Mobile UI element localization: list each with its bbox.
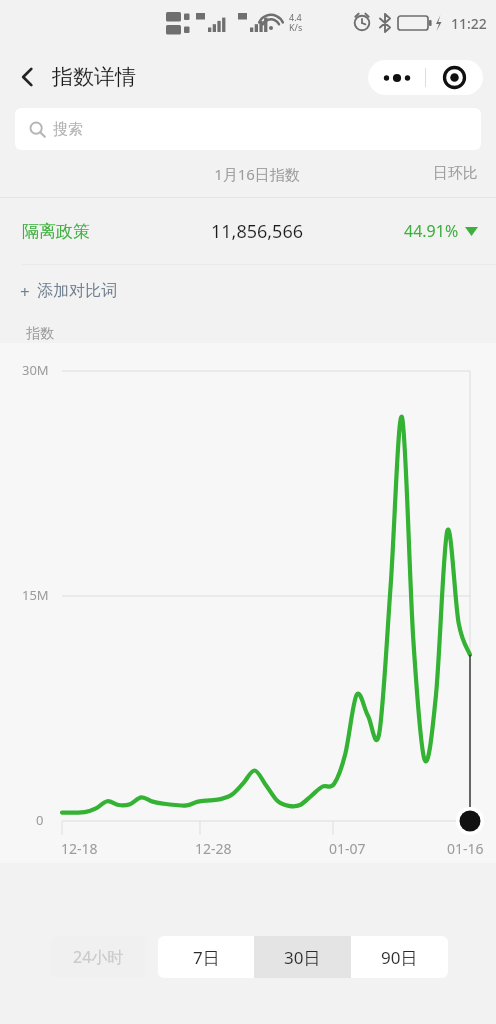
- button[interactable]: 定位: [426, 60, 483, 95]
- button[interactable]: 搜索: [15, 108, 481, 150]
- staticText: 12-28: [195, 839, 232, 858]
- staticText: 30M: [22, 361, 49, 379]
- staticText: 1月16日指数: [167, 164, 347, 184]
- staticText: 30日: [284, 946, 321, 969]
- button[interactable]: +: [0, 265, 496, 317]
- staticText: 01-16: [447, 839, 484, 858]
- button[interactable]: 隔离政策: [0, 198, 496, 264]
- staticText: 12-18: [61, 839, 98, 858]
- button[interactable]: 90日: [351, 936, 448, 978]
- staticText: +: [20, 280, 30, 303]
- staticText: 11,856,566: [167, 219, 347, 244]
- staticText: 44.91%: [404, 220, 459, 242]
- staticText: 0: [36, 811, 44, 829]
- staticText: 11:22: [451, 14, 487, 33]
- button[interactable]: 更多: [368, 60, 425, 95]
- button[interactable]: 24小时: [51, 936, 145, 978]
- button[interactable]: 返回: [5, 55, 49, 99]
- staticText: 添加对比词: [37, 281, 117, 301]
- staticText: 日环比: [347, 164, 478, 183]
- staticText: 90日: [381, 946, 418, 969]
- staticText: 24小时: [73, 946, 124, 968]
- staticText: 搜索: [53, 120, 83, 139]
- button[interactable]: 30日: [254, 936, 351, 978]
- staticText: 4.4 K/s: [289, 11, 303, 33]
- staticText: 指数: [26, 325, 54, 343]
- staticText: 指数详情: [52, 64, 136, 90]
- staticText: 01-07: [329, 839, 366, 858]
- staticText: 7日: [193, 946, 220, 969]
- button[interactable]: 7日: [158, 936, 254, 978]
- staticText: 15M: [22, 586, 49, 604]
- staticText: 隔离政策: [22, 221, 167, 242]
